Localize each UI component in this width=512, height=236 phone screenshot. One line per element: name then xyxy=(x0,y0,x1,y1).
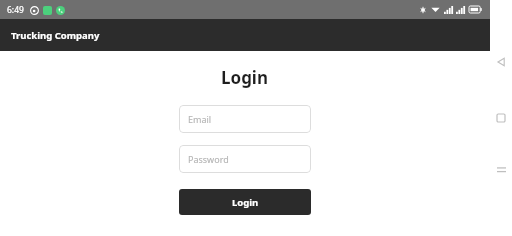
staticText: Trucking Company xyxy=(11,29,100,42)
button[interactable]: Password xyxy=(179,145,311,173)
staticText: Login xyxy=(221,66,269,89)
button[interactable]: Email xyxy=(179,105,311,133)
button[interactable]: Back xyxy=(492,53,510,71)
staticText: Email xyxy=(188,113,212,125)
staticText: Password xyxy=(188,153,229,165)
staticText: 6:49 xyxy=(7,4,24,16)
button[interactable]: Login xyxy=(179,189,311,215)
staticText: Login xyxy=(232,196,259,209)
button[interactable]: Home xyxy=(492,109,510,127)
button[interactable]: Recent apps xyxy=(492,161,510,179)
